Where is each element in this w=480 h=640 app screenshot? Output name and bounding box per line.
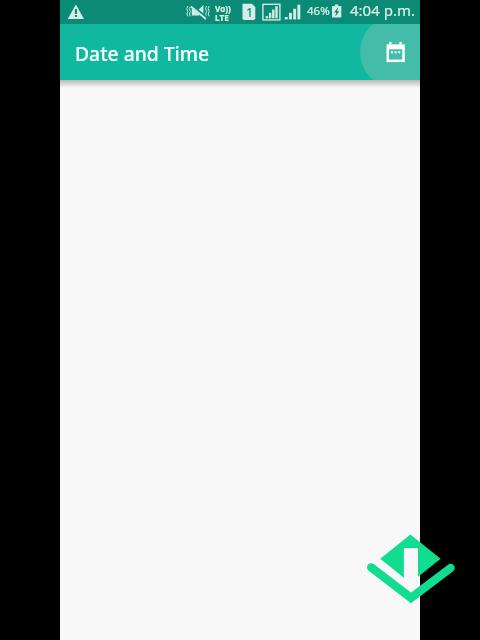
staticText: 46% [307, 3, 330, 19]
staticText: 1 [246, 4, 254, 21]
staticText: Vo)) LTE [215, 3, 231, 24]
staticText: 4:04 p.m. [350, 0, 415, 20]
button[interactable]: Pick date [360, 24, 420, 80]
staticText: Date and Time [75, 40, 210, 66]
